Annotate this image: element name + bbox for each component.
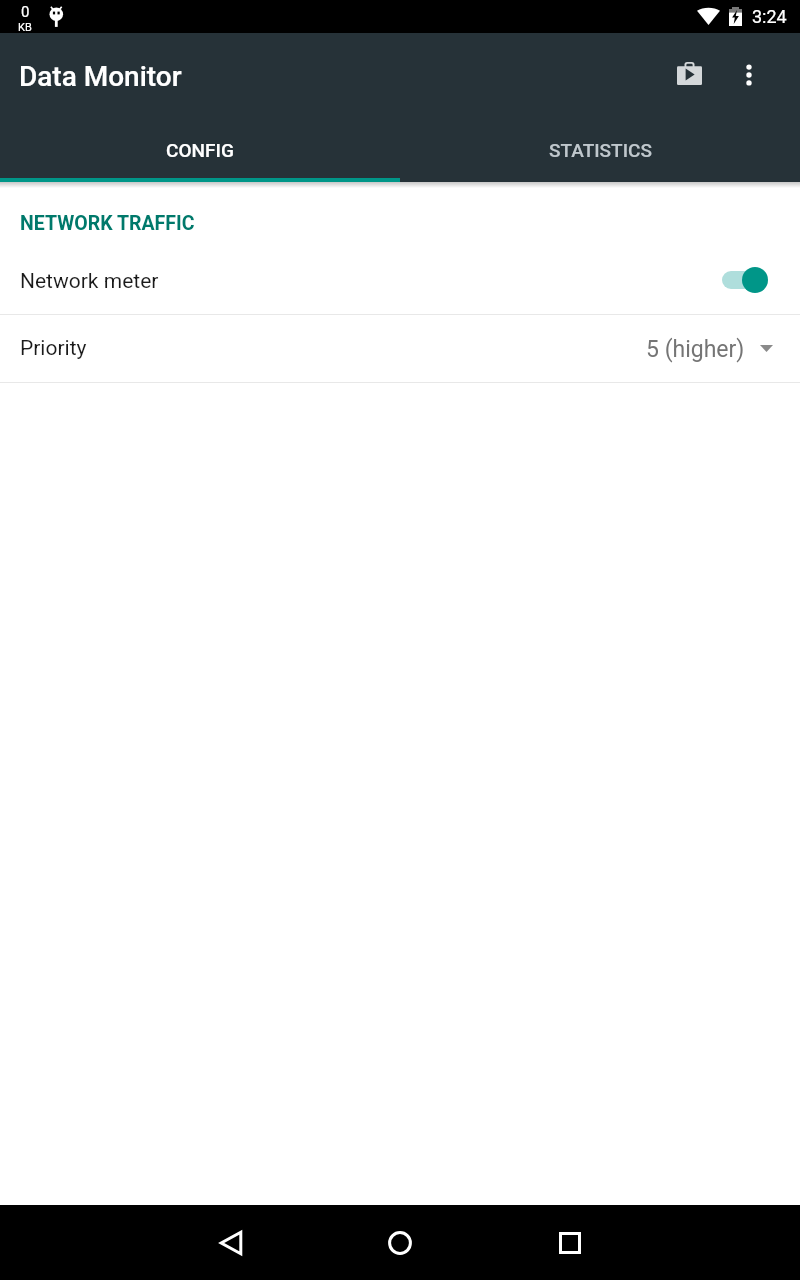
staticText: 0 — [21, 3, 30, 21]
button[interactable]: Network meter — [0, 246, 800, 314]
staticText: Priority — [20, 336, 646, 361]
staticText: 3:24 — [752, 6, 787, 27]
staticText: STATISTICS — [549, 139, 652, 161]
button[interactable]: Home — [356, 1205, 444, 1280]
button[interactable]: STATISTICS — [400, 117, 800, 182]
button[interactable]: Back — [187, 1205, 275, 1280]
button[interactable]: Priority — [0, 315, 800, 382]
staticText: KB — [18, 21, 32, 34]
staticText: NETWORK TRAFFIC — [20, 212, 195, 235]
staticText: CONFIG — [166, 139, 234, 161]
staticText: Data Monitor — [19, 60, 182, 93]
button[interactable]: Recent apps — [526, 1205, 614, 1280]
staticText: Network meter — [20, 269, 722, 294]
staticText: 5 (higher) — [646, 336, 745, 363]
button[interactable]: Google Play — [645, 31, 733, 115]
button[interactable]: More options — [705, 33, 793, 117]
button[interactable]: CONFIG — [0, 117, 400, 182]
